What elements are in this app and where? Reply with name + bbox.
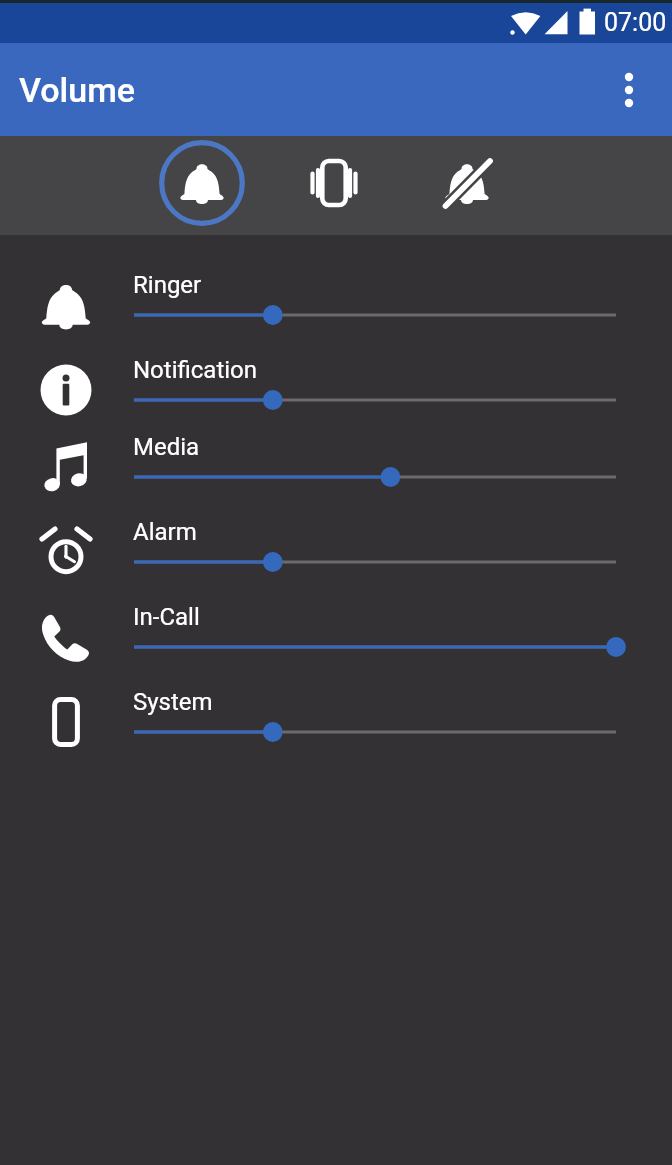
button[interactable]: Notification: [0, 352, 672, 432]
staticText: Alarm: [133, 518, 197, 546]
button[interactable]: System: [0, 684, 672, 764]
button[interactable]: Ring mode: [157, 138, 247, 228]
button[interactable]: Ringer: [0, 267, 672, 347]
staticText: Media: [133, 433, 200, 461]
staticText: In-Call: [133, 603, 200, 631]
staticText: Ringer: [133, 271, 202, 299]
button[interactable]: In-Call: [0, 599, 672, 679]
button[interactable]: Media: [0, 429, 672, 509]
button[interactable]: Alarm: [0, 514, 672, 594]
staticText: Volume: [19, 70, 136, 110]
staticText: 07:00: [604, 8, 667, 37]
button[interactable]: More options: [599, 60, 659, 120]
button[interactable]: Silent mode: [422, 138, 512, 228]
staticText: Notification: [133, 356, 258, 384]
staticText: System: [133, 688, 213, 716]
button[interactable]: Vibrate mode: [289, 138, 379, 228]
